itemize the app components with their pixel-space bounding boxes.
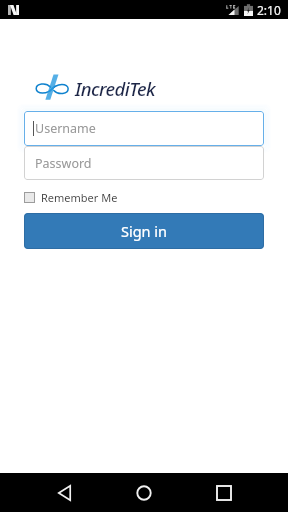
staticText: Password bbox=[35, 155, 92, 172]
staticText: IncrediTek bbox=[75, 76, 155, 101]
button[interactable]: Home bbox=[120, 473, 168, 512]
button[interactable]: Remember Me bbox=[24, 189, 118, 205]
staticText: Sign in bbox=[121, 221, 168, 241]
button[interactable]: Password bbox=[24, 146, 264, 180]
staticText: Remember Me bbox=[41, 190, 118, 205]
button[interactable]: Sign in bbox=[24, 213, 264, 249]
button[interactable]: Back bbox=[40, 473, 88, 512]
staticText: Username bbox=[35, 120, 96, 137]
staticText: 2:10 bbox=[257, 2, 281, 18]
button[interactable]: Recent apps bbox=[200, 473, 248, 512]
button[interactable]: Username bbox=[24, 111, 264, 146]
